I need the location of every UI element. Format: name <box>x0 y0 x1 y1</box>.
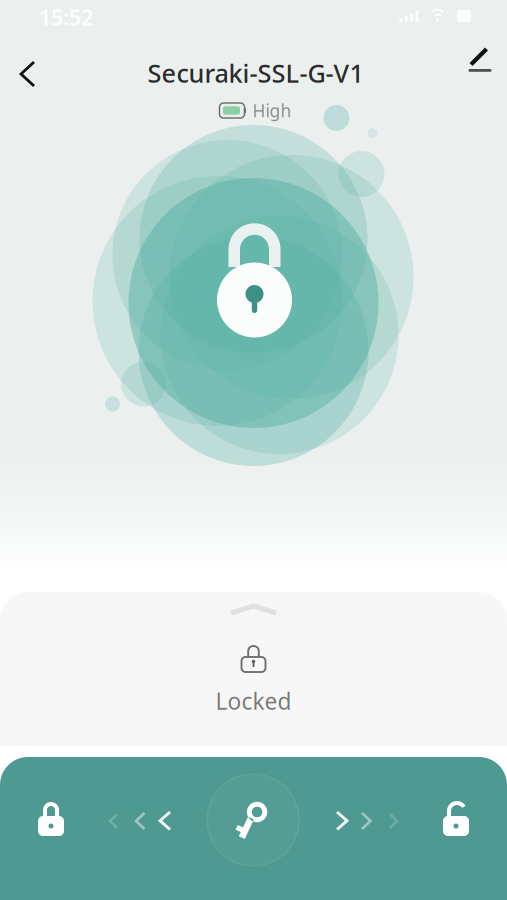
button[interactable]: Lock <box>31 799 71 843</box>
staticText: Locked <box>215 686 291 716</box>
button[interactable]: Edit <box>460 42 506 86</box>
button[interactable]: Key <box>207 774 299 866</box>
staticText: 15:52 <box>39 3 93 31</box>
button[interactable]: Back <box>0 44 55 104</box>
staticText: Securaki-SSL-G-V1 <box>147 56 363 90</box>
button[interactable]: Unlock <box>436 799 476 843</box>
staticText: High <box>252 99 291 122</box>
